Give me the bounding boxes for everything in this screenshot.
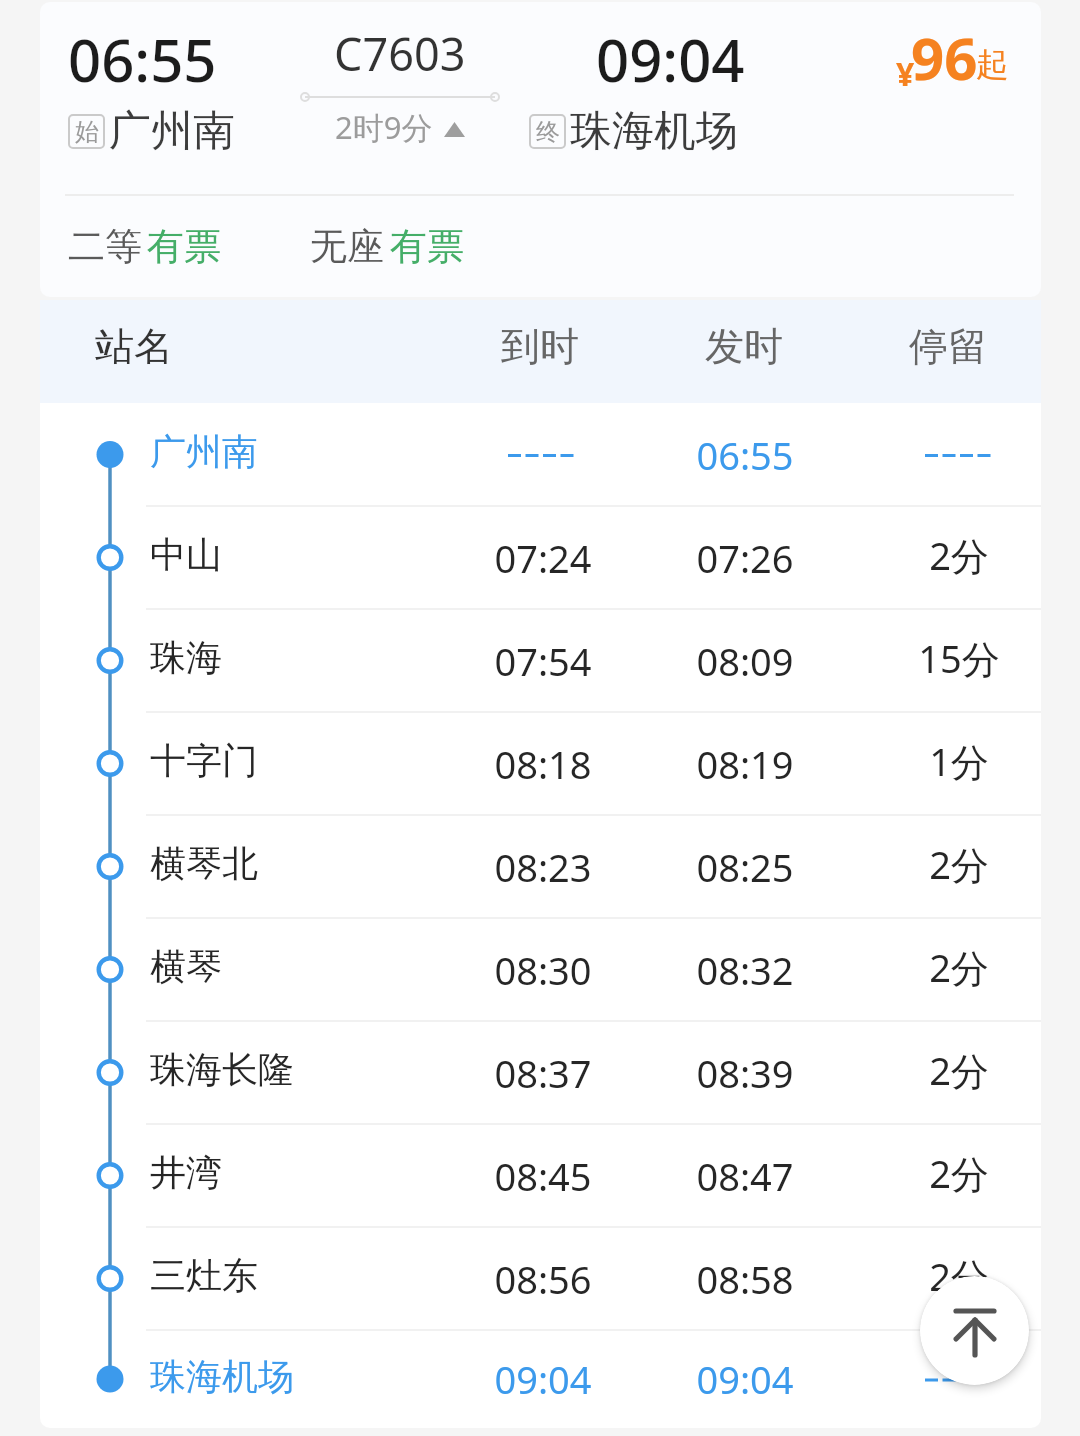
staticText: 09:04	[596, 20, 745, 99]
staticText: 珠海机场	[570, 105, 738, 158]
staticText: 2分	[864, 941, 1041, 993]
staticText: 08:47	[650, 1150, 840, 1202]
staticText: 07:26	[650, 532, 840, 584]
staticText: 2分	[864, 1250, 1041, 1302]
button[interactable]: 06:55	[40, 2, 1041, 297]
staticText: 08:19	[650, 738, 840, 790]
staticText: 起	[976, 44, 1009, 86]
staticText: 2分	[864, 529, 1041, 581]
staticText: 2分	[864, 1044, 1041, 1096]
staticText: 中山	[150, 532, 222, 577]
staticText: 08:23	[448, 841, 638, 893]
button[interactable]: 井湾	[40, 1124, 1041, 1227]
staticText: 广州南	[109, 105, 235, 158]
staticText: 横琴北	[150, 841, 258, 886]
staticText: 井湾	[150, 1150, 222, 1195]
staticText: 到时	[445, 322, 635, 371]
staticText: 07:24	[448, 532, 638, 584]
staticText: 07:54	[448, 635, 638, 687]
staticText: 08:45	[448, 1150, 638, 1202]
staticText: 珠海	[150, 635, 222, 680]
staticText: 二等	[68, 223, 142, 270]
staticText: 横琴	[150, 944, 222, 989]
staticText: 08:32	[650, 944, 840, 996]
staticText: 15分	[864, 632, 1041, 684]
staticText: 有票	[390, 223, 464, 270]
staticText: 珠海机场	[150, 1354, 294, 1399]
button[interactable]: 广州南	[40, 403, 1041, 506]
staticText: 08:09	[650, 635, 840, 687]
staticText: 08:56	[448, 1253, 638, 1305]
staticText: 终	[536, 117, 560, 147]
staticText: 2时9分	[335, 106, 433, 148]
staticText: 96	[911, 18, 978, 97]
button[interactable]: 中山	[40, 506, 1041, 609]
staticText: 1分	[864, 735, 1041, 787]
staticText: 发时	[649, 322, 839, 371]
button[interactable]: 三灶东	[40, 1227, 1041, 1330]
staticText: ¥	[896, 52, 915, 96]
staticText: 三灶东	[150, 1253, 258, 1298]
staticText: 有票	[147, 223, 221, 270]
button[interactable]: 珠海	[40, 609, 1041, 712]
staticText: 2分	[864, 1147, 1041, 1199]
staticText: 站名	[95, 322, 173, 371]
staticText: C7603	[334, 23, 466, 84]
staticText: 09:04	[448, 1353, 638, 1405]
staticText: 08:39	[650, 1047, 840, 1099]
staticText: 08:25	[650, 841, 840, 893]
staticText: 十字门	[150, 738, 258, 783]
button[interactable]: 横琴北	[40, 815, 1041, 918]
button[interactable]: 十字门	[40, 712, 1041, 815]
staticText: 08:37	[448, 1047, 638, 1099]
staticText: 08:30	[448, 944, 638, 996]
staticText: 06:55	[68, 20, 217, 99]
button[interactable]: 横琴	[40, 918, 1041, 1021]
button[interactable]: Back to top	[920, 1276, 1029, 1385]
staticText: 09:04	[650, 1353, 840, 1405]
button[interactable]: 珠海长隆	[40, 1021, 1041, 1124]
button[interactable]: 珠海机场	[40, 1330, 1041, 1428]
staticText: 08:58	[650, 1253, 840, 1305]
staticText: 停留	[853, 322, 1043, 371]
staticText: 2分	[864, 838, 1041, 890]
staticText: 06:55	[650, 429, 840, 481]
staticText: 珠海长隆	[150, 1047, 294, 1092]
staticText: 08:18	[448, 738, 638, 790]
staticText: 始	[75, 117, 99, 147]
staticText: 广州南	[150, 429, 258, 474]
staticText: 无座	[310, 223, 384, 270]
